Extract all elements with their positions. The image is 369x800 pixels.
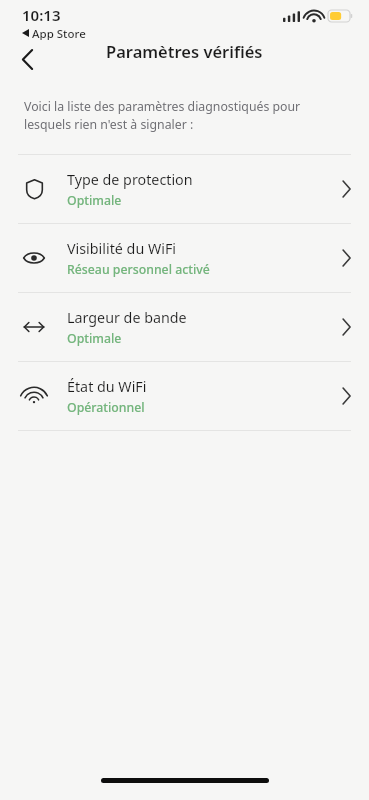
- staticText: Optimale: [67, 330, 122, 347]
- staticText: Type de protection: [67, 170, 193, 189]
- button[interactable]: Largeur de bande: [0, 293, 369, 361]
- staticText: 10:13: [22, 5, 61, 25]
- staticText: Largeur de bande: [67, 308, 187, 327]
- staticText: Paramètres vérifiés: [106, 40, 263, 62]
- button[interactable]: Visibilité du WiFi: [0, 224, 369, 292]
- staticText: État du WiFi: [67, 377, 147, 396]
- button[interactable]: Type de protection: [0, 155, 369, 223]
- staticText: Voici la liste des paramètres diagnostiq…: [24, 98, 349, 133]
- staticText: Opérationnel: [67, 399, 145, 416]
- staticText: App Store: [32, 26, 86, 40]
- staticText: Réseau personnel activé: [67, 261, 210, 278]
- button[interactable]: État du WiFi: [0, 362, 369, 430]
- button[interactable]: Back: [6, 40, 48, 78]
- staticText: Visibilité du WiFi: [67, 239, 177, 258]
- staticText: Optimale: [67, 192, 122, 209]
